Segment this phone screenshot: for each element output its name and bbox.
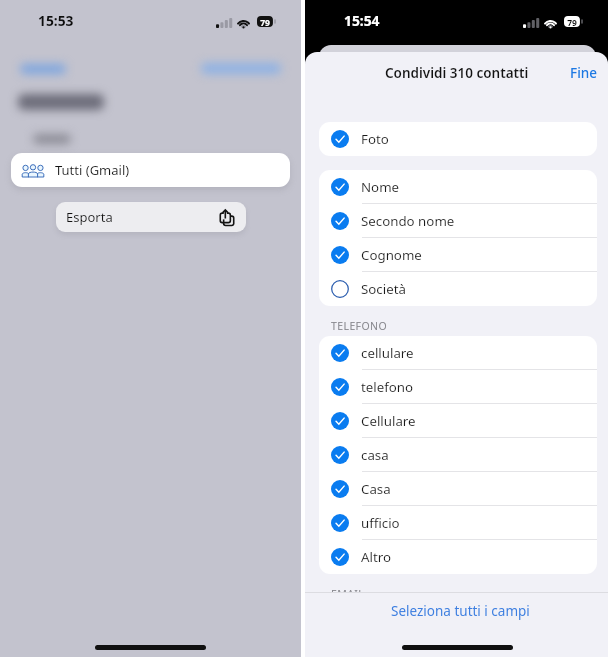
button[interactable]: Nome	[319, 170, 597, 204]
staticText: Cognome	[361, 246, 422, 264]
staticText: Seleziona tutti i campi	[391, 602, 530, 620]
button[interactable]: Cognome	[319, 238, 597, 272]
staticText: Tutti (Gmail)	[55, 161, 130, 179]
staticText: 79	[257, 17, 273, 29]
button[interactable]: Cellulare	[319, 404, 597, 438]
staticText: Casa	[361, 480, 391, 498]
staticText: casa	[361, 446, 389, 464]
staticText: Società	[361, 280, 406, 298]
staticText: Fine	[570, 64, 597, 82]
button[interactable]: Tutti (Gmail)	[11, 153, 290, 187]
staticText: TELEFONO	[331, 319, 388, 333]
staticText: ufficio	[361, 514, 400, 532]
staticText: telefono	[361, 378, 414, 396]
staticText: EMAIL	[331, 587, 365, 601]
staticText: 79	[564, 17, 580, 29]
staticText: cellulare	[361, 344, 414, 362]
button[interactable]: Esporta	[56, 202, 246, 232]
button[interactable]: cellulare	[319, 336, 597, 370]
staticText: 15:53	[38, 11, 74, 30]
button[interactable]: ufficio	[319, 506, 597, 540]
staticText: Nome	[361, 178, 400, 196]
staticText: 15:54	[344, 11, 380, 30]
button[interactable]: Secondo nome	[319, 204, 597, 238]
other: Share	[220, 209, 234, 226]
staticText: Foto	[361, 130, 389, 148]
button[interactable]: Casa	[319, 472, 597, 506]
staticText: Cellulare	[361, 412, 416, 430]
button[interactable]: Fine	[554, 56, 608, 90]
button[interactable]: Foto	[319, 122, 597, 156]
button[interactable]: telefono	[319, 370, 597, 404]
staticText: Altro	[361, 548, 391, 566]
button[interactable]: Società	[319, 272, 597, 306]
staticText: Esporta	[66, 208, 113, 226]
button[interactable]: casa	[319, 438, 597, 472]
button[interactable]: Seleziona tutti i campi	[371, 596, 550, 626]
button[interactable]: Altro	[319, 540, 597, 574]
staticText: Secondo nome	[361, 212, 455, 230]
staticText: Condividi 310 contatti	[385, 64, 529, 82]
